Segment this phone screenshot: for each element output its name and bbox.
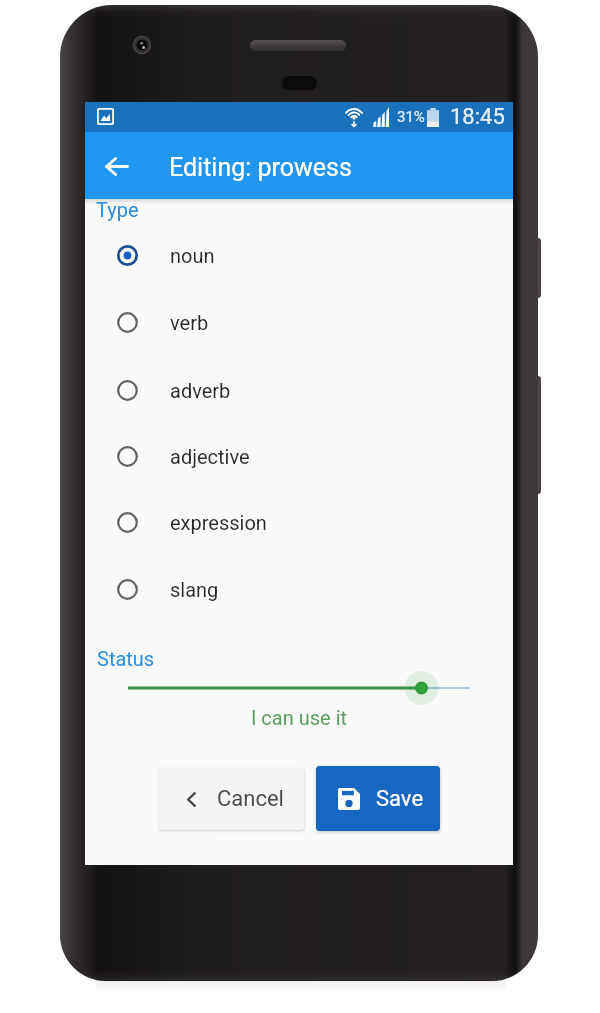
staticText: 18:45 [450, 104, 505, 130]
button[interactable]: Status slider [85, 658, 513, 718]
button[interactable]: Cancel [159, 768, 304, 830]
staticText: Cancel [217, 786, 284, 812]
staticText: adverb [170, 379, 231, 402]
staticText: adjective [170, 445, 250, 468]
staticText: Save [376, 786, 424, 812]
staticText: slang [170, 578, 219, 601]
staticText: Status [97, 647, 155, 670]
button[interactable]: Back [94, 144, 138, 188]
staticText: Editing: prowess [169, 153, 352, 182]
staticText: noun [170, 244, 215, 267]
staticText: I can use it [85, 706, 513, 729]
button[interactable]: expression [85, 493, 513, 551]
button[interactable]: noun [85, 226, 513, 284]
staticText: expression [170, 511, 267, 534]
button[interactable]: adverb [85, 361, 513, 419]
staticText: verb [170, 311, 209, 334]
staticText: Type [96, 198, 139, 221]
button[interactable]: adjective [85, 427, 513, 485]
button[interactable]: verb [85, 293, 513, 351]
button[interactable]: slang [85, 560, 513, 618]
button[interactable]: Save [316, 766, 440, 831]
staticText: 31% [397, 108, 425, 126]
